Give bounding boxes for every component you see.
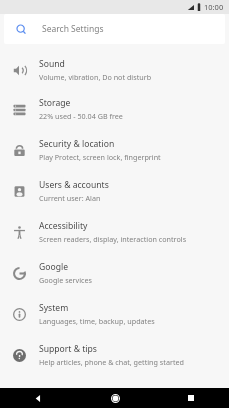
- button[interactable]: Search: [4, 14, 225, 44]
- staticText: Users & accounts: [39, 179, 109, 191]
- staticText: Storage: [39, 97, 71, 109]
- staticText: Play Protect, screen lock, fingerprint: [39, 152, 161, 162]
- staticText: Support & tips: [39, 343, 97, 355]
- staticText: Security & location: [39, 138, 115, 150]
- button[interactable]: Accessibility: [0, 211, 229, 252]
- staticText: Accessibility: [39, 220, 88, 232]
- staticText: Google: [39, 261, 69, 273]
- button[interactable]: Recent apps: [153, 388, 229, 408]
- staticText: Help articles, phone & chat, getting sta…: [39, 357, 184, 367]
- staticText: Search Settings: [42, 23, 104, 35]
- button[interactable]: Sound: [0, 51, 229, 88]
- button[interactable]: Storage: [0, 88, 229, 129]
- staticText: Google services: [39, 275, 93, 285]
- staticText: Screen readers, display, interaction con…: [39, 234, 187, 244]
- button[interactable]: Users & accounts: [0, 170, 229, 211]
- button[interactable]: Home: [77, 388, 153, 408]
- staticText: System: [39, 302, 69, 314]
- button[interactable]: Google: [0, 252, 229, 293]
- button[interactable]: Support & tips: [0, 334, 229, 375]
- button[interactable]: System: [0, 293, 229, 334]
- other: Search: [16, 24, 27, 35]
- button[interactable]: Security & location: [0, 129, 229, 170]
- button[interactable]: Back: [0, 388, 77, 408]
- staticText: Volume, vibration, Do not disturb: [39, 72, 152, 82]
- staticText: 10:00: [204, 2, 224, 12]
- staticText: Sound: [39, 58, 65, 70]
- staticText: 22% used - 50.04 GB free: [39, 111, 123, 121]
- staticText: Languages, time, backup, updates: [39, 316, 155, 326]
- staticText: Current user: Alan: [39, 193, 101, 203]
